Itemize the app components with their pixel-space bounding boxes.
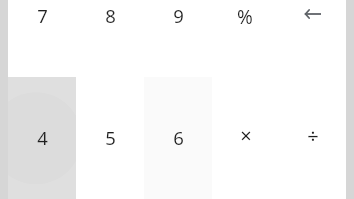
button[interactable]: Eight: [76, 0, 144, 77]
staticText: ×: [240, 122, 252, 149]
staticText: %: [237, 4, 253, 30]
button[interactable]: Six: [144, 77, 212, 199]
button[interactable]: Four: [8, 77, 76, 199]
staticText: 5: [105, 125, 116, 150]
staticText: 6: [173, 125, 184, 150]
button[interactable]: Backspace: [279, 0, 347, 77]
button[interactable]: Divide: [279, 77, 347, 199]
button[interactable]: Percent: [211, 0, 279, 77]
button[interactable]: Seven: [8, 0, 76, 77]
button[interactable]: Multiply: [211, 77, 279, 199]
staticText: 4: [37, 125, 48, 150]
button[interactable]: Five: [76, 77, 144, 199]
staticText: 9: [173, 3, 184, 28]
staticText: 7: [37, 3, 48, 28]
button[interactable]: Nine: [144, 0, 212, 77]
staticText: 8: [105, 3, 116, 28]
staticText: ÷: [307, 122, 319, 149]
